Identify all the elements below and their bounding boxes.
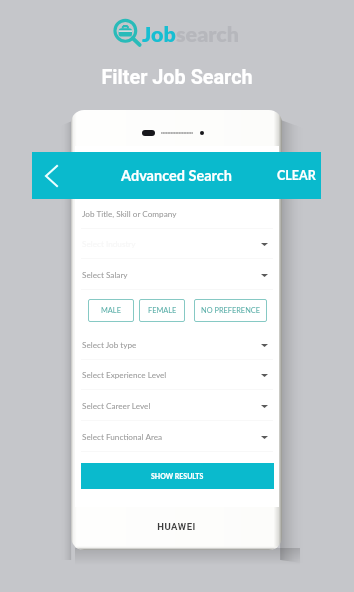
button[interactable]: Select Job type <box>75 330 279 360</box>
staticText: MALE <box>101 306 121 315</box>
button[interactable]: Select Functional Area <box>75 422 279 452</box>
button[interactable]: Job Title, Skill or Company <box>75 199 279 229</box>
button[interactable]: Select Experience Level <box>75 360 279 390</box>
staticText: search <box>176 21 240 47</box>
staticText: Select Salary <box>82 270 128 280</box>
button[interactable]: Select Career Level <box>75 391 279 421</box>
button[interactable]: Select Salary <box>75 260 279 290</box>
button[interactable]: CLEAR <box>272 152 321 199</box>
button[interactable]: Select Industry <box>75 229 279 259</box>
button[interactable]: Back <box>33 152 69 199</box>
staticText: Job <box>142 21 176 47</box>
staticText: SHOW RESULTS <box>151 472 204 480</box>
staticText: Select Experience Level <box>82 370 167 380</box>
staticText: CLEAR <box>277 168 316 183</box>
staticText: Select Functional Area <box>82 432 163 442</box>
staticText: Advanced Search <box>121 167 232 184</box>
staticText: HUAWEI <box>71 521 282 532</box>
staticText: FEMALE <box>148 306 177 315</box>
staticText: Job Title, Skill or Company <box>82 209 177 219</box>
button[interactable]: NO PREFERENCE <box>194 299 267 322</box>
button[interactable]: SHOW RESULTS <box>81 463 274 489</box>
staticText: NO PREFERENCE <box>201 306 260 315</box>
button[interactable]: FEMALE <box>139 299 185 322</box>
staticText: Select Job type <box>82 340 137 350</box>
staticText: Filter Job Search <box>0 66 354 89</box>
button[interactable]: MALE <box>88 299 134 322</box>
staticText: Select Career Level <box>82 401 151 411</box>
